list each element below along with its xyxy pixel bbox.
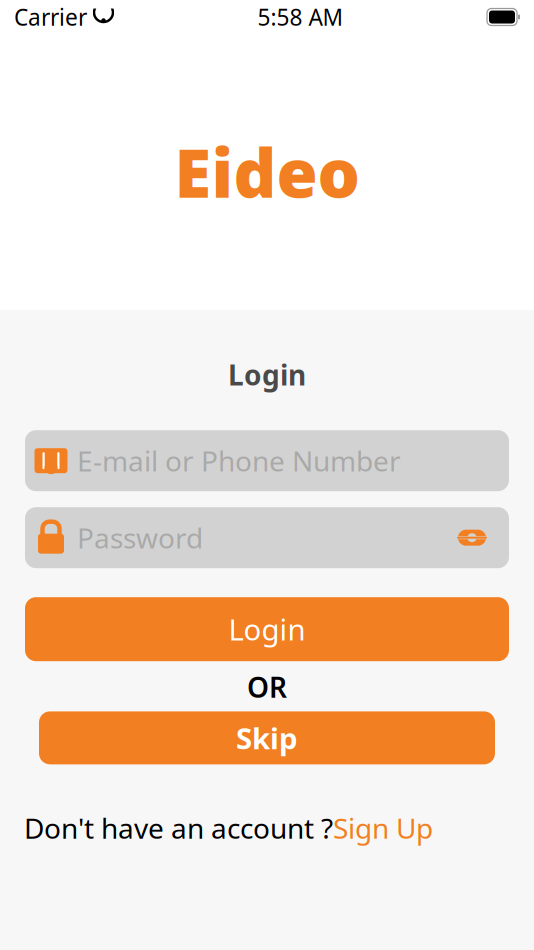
staticText: Skip <box>236 718 298 757</box>
button[interactable]: E-mail or Phone Number <box>25 430 509 491</box>
staticText: Eideo <box>174 128 359 216</box>
staticText: Don't have an account ? <box>24 809 333 847</box>
staticText: Password <box>77 519 203 556</box>
staticText: 5:58 AM <box>257 2 343 32</box>
staticText: Sign Up <box>333 809 433 847</box>
button[interactable]: Skip <box>39 711 495 764</box>
staticText: Login <box>228 610 305 649</box>
staticText: Login <box>228 356 306 393</box>
staticText: E-mail or Phone Number <box>77 442 401 479</box>
staticText: Carrier <box>14 2 87 32</box>
button[interactable]: Sign Up <box>333 809 433 847</box>
button[interactable]: Login <box>25 597 509 661</box>
staticText: OR <box>247 668 287 705</box>
button[interactable]: Password <box>25 507 509 568</box>
